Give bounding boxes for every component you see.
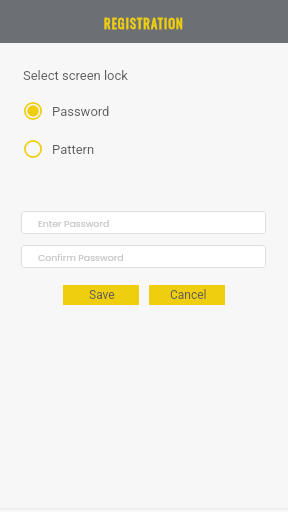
staticText: Select screen lock (23, 68, 128, 83)
staticText: Password (52, 104, 110, 119)
staticText: Enter Password (38, 217, 110, 230)
other: Pattern (24, 140, 42, 158)
button[interactable]: REGISTRATION (0, 0, 288, 43)
button[interactable]: Confirm Password (21, 245, 266, 268)
staticText: Cancel (170, 288, 207, 302)
staticText: Pattern (52, 142, 95, 157)
staticText: REGISTRATION (104, 14, 184, 33)
button[interactable]: Pattern (0, 140, 288, 158)
other: Password selected (24, 102, 42, 120)
button[interactable]: Password selected (0, 102, 288, 120)
button[interactable]: Cancel (149, 285, 225, 305)
staticText: Confirm Password (38, 251, 124, 264)
button[interactable]: Save (63, 285, 139, 305)
staticText: Save (89, 288, 115, 302)
button[interactable]: Enter Password (21, 211, 266, 234)
